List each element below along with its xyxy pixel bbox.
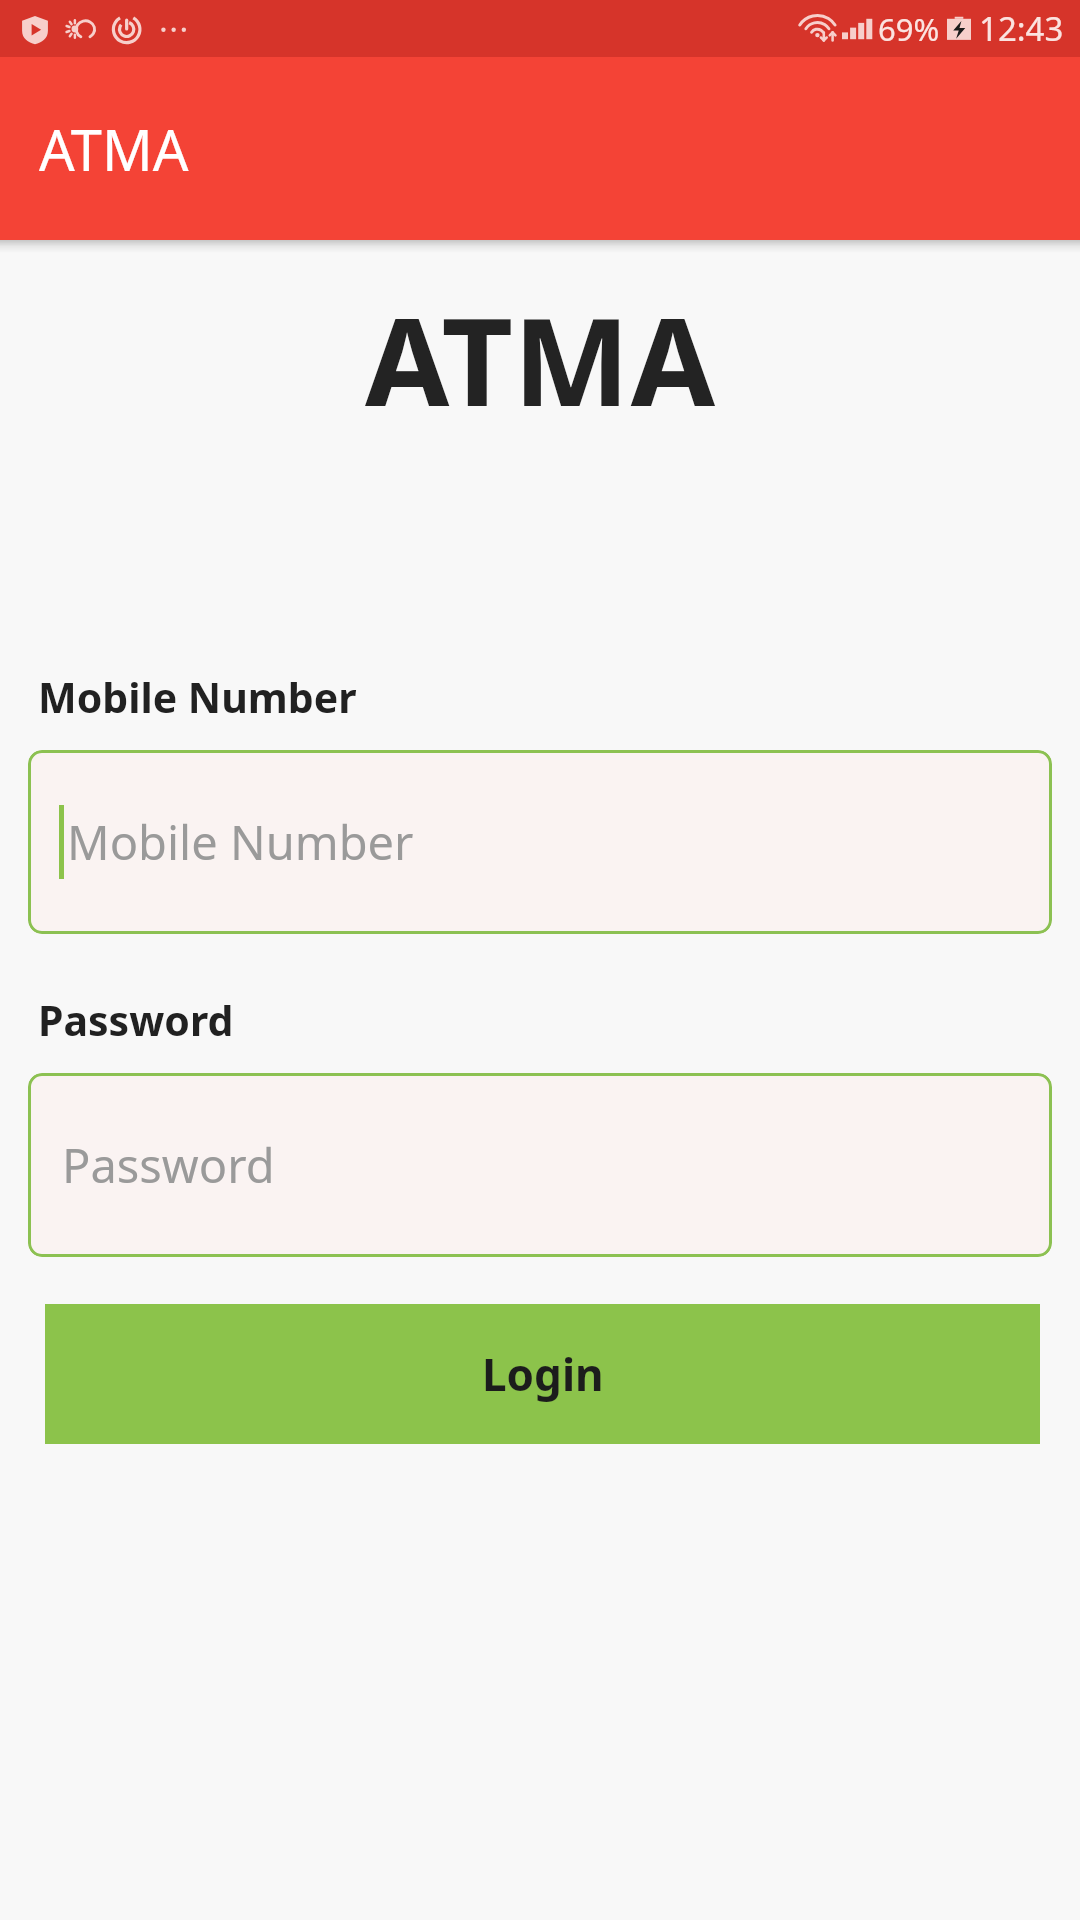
staticText: Login	[482, 1344, 604, 1404]
staticText: Mobile Number	[67, 810, 414, 874]
staticText: ATMA	[39, 111, 189, 187]
staticText: ATMA	[364, 275, 716, 406]
button[interactable]: Password input	[28, 1073, 1052, 1257]
button[interactable]: Mobile Number input	[28, 750, 1052, 934]
staticText: Password	[38, 992, 234, 1048]
staticText: Mobile Number	[38, 669, 357, 725]
staticText: 12:43	[979, 6, 1064, 51]
staticText: Password	[62, 1133, 275, 1197]
staticText: 69%	[878, 8, 940, 50]
button[interactable]: Login	[45, 1304, 1040, 1444]
